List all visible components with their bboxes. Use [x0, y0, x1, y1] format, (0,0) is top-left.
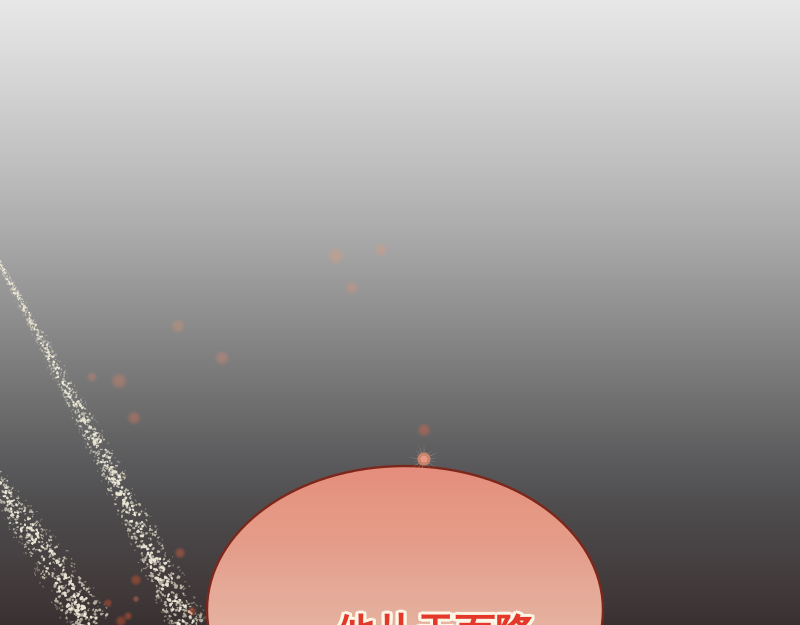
- staticText: 他从天而降: [338, 611, 538, 625]
- staticText: 他从天而降: [337, 607, 537, 625]
- staticText: 他从天而降: [332, 608, 532, 625]
- staticText: 他从天而降: [335, 609, 535, 625]
- staticText: 他从天而降: [332, 611, 532, 625]
- staticText: 他从天而降: [338, 609, 538, 625]
- staticText: 他从天而降: [337, 612, 537, 625]
- staticText: 他从天而降: [332, 609, 532, 625]
- staticText: 他从天而降: [335, 606, 535, 625]
- staticText: 他从天而降: [338, 608, 538, 625]
- staticText: 他从天而降: [333, 612, 533, 625]
- staticText: 他从天而降: [335, 612, 535, 625]
- staticText: 他从天而降: [333, 607, 533, 625]
